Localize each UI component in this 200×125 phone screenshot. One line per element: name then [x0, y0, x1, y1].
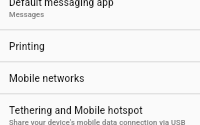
staticText: Default messaging app: [9, 0, 114, 9]
button[interactable]: Default messaging app: [0, 0, 200, 29]
staticText: Tethering and Mobile hotspot: [9, 105, 143, 117]
button[interactable]: Mobile networks: [0, 63, 200, 93]
button[interactable]: Printing: [0, 31, 200, 61]
staticText: Mobile networks: [9, 73, 85, 85]
staticText: Printing: [9, 41, 45, 53]
button[interactable]: Tethering and Mobile hotspot: [0, 95, 200, 112]
staticText: Messages: [9, 10, 45, 19]
staticText: Share your device's mobile data connecti…: [9, 118, 186, 125]
